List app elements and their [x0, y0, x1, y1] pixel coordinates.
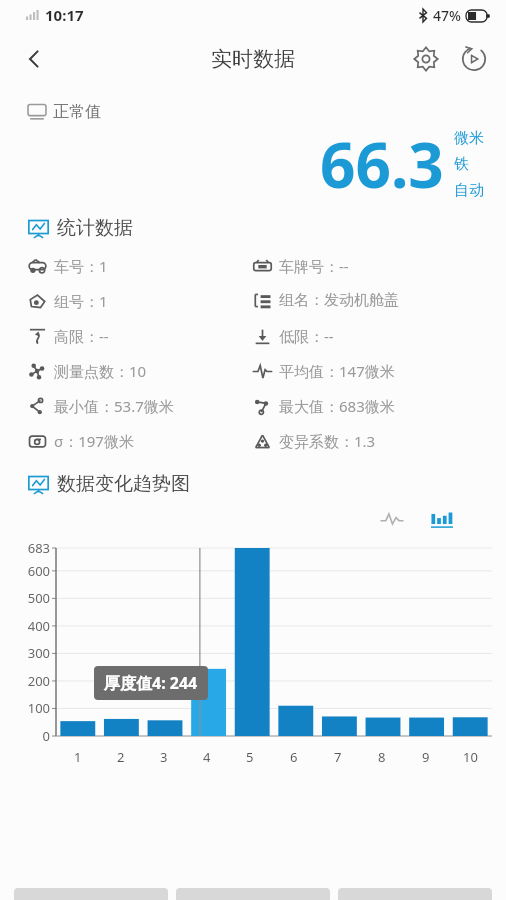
staticText: 最大值：683微米	[279, 396, 395, 416]
staticText: 测量点数：10	[54, 361, 147, 381]
staticText: 低限：--	[279, 326, 334, 346]
staticText: 8	[378, 748, 386, 766]
staticText: 高限：--	[54, 326, 109, 346]
staticText: 400	[4, 617, 50, 635]
staticText: 3	[160, 748, 168, 766]
staticText: 683	[4, 539, 50, 557]
staticText: σ：197微米	[54, 431, 134, 451]
staticText: 变异系数：1.3	[279, 431, 376, 451]
staticText: 300	[4, 644, 50, 662]
staticText: 600	[4, 562, 50, 580]
button[interactable]: Bar chart	[422, 504, 462, 534]
staticText: 自动	[454, 181, 484, 200]
staticText: 组号：1	[54, 291, 108, 311]
staticText: 铁	[454, 155, 469, 174]
staticText: 最小值：53.7微米	[54, 396, 174, 416]
staticText: 500	[4, 589, 50, 607]
staticText: 实时数据	[211, 46, 295, 72]
button[interactable]: Settings	[402, 35, 450, 83]
staticText: 6	[290, 748, 298, 766]
staticText: 数据变化趋势图	[57, 472, 190, 496]
staticText: 车号：1	[54, 256, 108, 276]
staticText: 微米	[454, 129, 484, 148]
staticText: 1	[74, 748, 82, 766]
staticText: 7	[334, 748, 342, 766]
button[interactable]: Back	[10, 35, 58, 83]
staticText: 车牌号：--	[279, 256, 349, 276]
staticText: 4	[203, 748, 211, 766]
staticText: 66.3	[320, 122, 444, 206]
staticText: 平均值：147微米	[279, 361, 395, 381]
staticText: 100	[4, 699, 50, 717]
staticText: 厚度值4: 244	[104, 672, 198, 694]
staticText: 9	[422, 748, 430, 766]
staticText: 200	[4, 672, 50, 690]
staticText: 组名：发动机舱盖	[279, 291, 399, 310]
staticText: 统计数据	[57, 216, 133, 240]
staticText: 10:17	[45, 5, 84, 25]
staticText: 2	[117, 748, 125, 766]
button[interactable]: Replay	[450, 35, 498, 83]
staticText: 正常值	[53, 102, 101, 122]
staticText: 0	[4, 727, 50, 745]
button[interactable]: Line chart	[372, 504, 412, 534]
staticText: 5	[246, 748, 254, 766]
staticText: 10	[463, 748, 478, 766]
staticText: 47%	[433, 6, 461, 25]
